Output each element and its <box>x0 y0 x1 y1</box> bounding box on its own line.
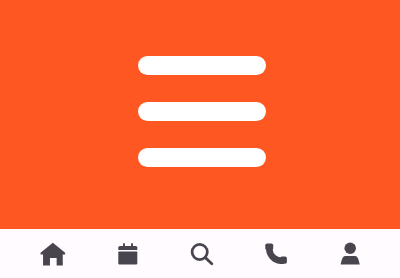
button[interactable]: Home <box>31 232 75 276</box>
button[interactable]: Calendar <box>106 232 150 276</box>
button[interactable]: Call <box>254 232 298 276</box>
button[interactable]: Open navigation menu <box>138 56 266 167</box>
button[interactable]: Search <box>178 232 222 276</box>
button[interactable]: Profile <box>328 232 372 276</box>
